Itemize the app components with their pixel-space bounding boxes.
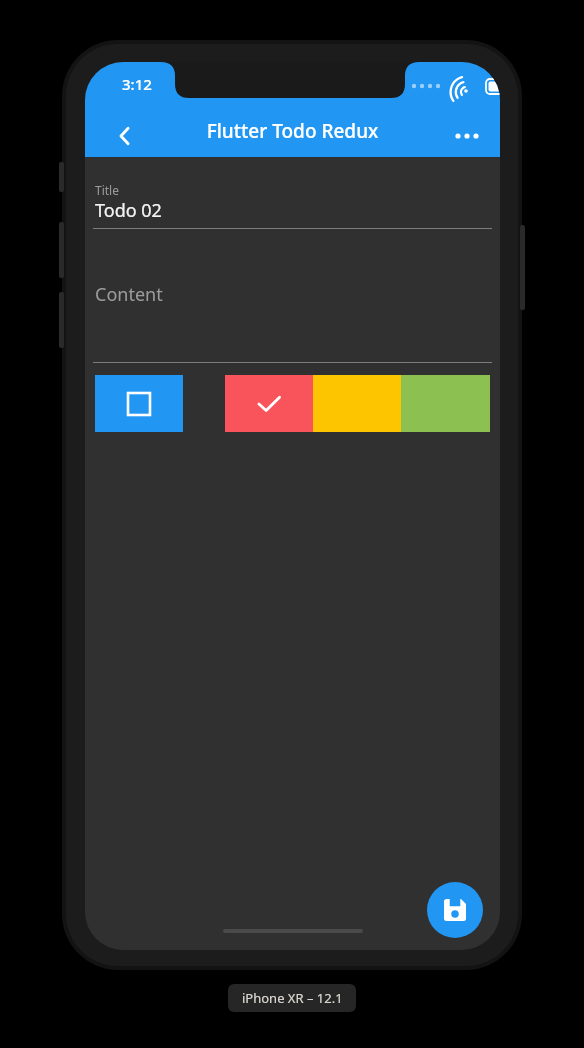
staticText: Flutter Todo Redux — [85, 118, 500, 950]
staticText: 3:12 — [122, 74, 152, 94]
staticText: iPhone XR – 12.1 — [242, 989, 343, 1007]
button[interactable]: Toggle complete — [95, 375, 183, 432]
button[interactable]: Red — [225, 375, 313, 432]
button[interactable]: Content — [93, 234, 492, 362]
staticText: Todo 02 — [95, 198, 162, 223]
staticText: Title — [95, 182, 119, 198]
button[interactable]: Todo 02 — [93, 192, 492, 232]
button[interactable]: Save — [427, 882, 483, 938]
button[interactable]: Back — [101, 114, 149, 158]
staticText: Content — [95, 282, 163, 307]
button[interactable]: More options — [443, 114, 491, 158]
